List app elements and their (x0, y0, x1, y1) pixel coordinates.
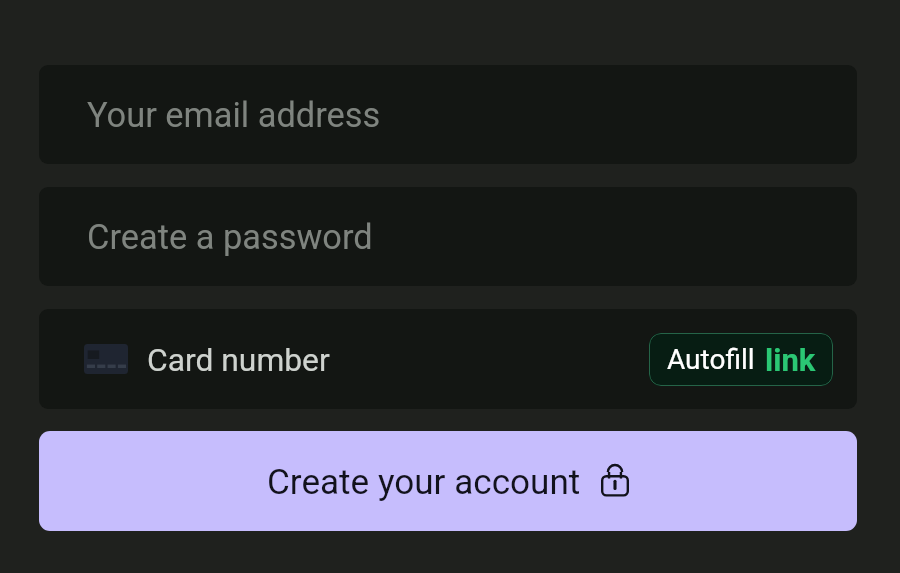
staticText: link (765, 342, 816, 378)
button[interactable]: Autofill (649, 333, 833, 386)
staticText: Your email address (87, 95, 381, 135)
staticText: Autofill (667, 343, 755, 376)
staticText: Create your account (267, 461, 581, 502)
button[interactable]: Create a password (39, 187, 857, 286)
staticText: Card number (147, 341, 330, 378)
button[interactable]: Create your account (39, 431, 857, 531)
staticText: Create a password (87, 217, 373, 257)
button[interactable]: Your email address (39, 65, 857, 164)
other: Credit card (84, 344, 128, 374)
button[interactable]: Credit card (39, 309, 857, 409)
